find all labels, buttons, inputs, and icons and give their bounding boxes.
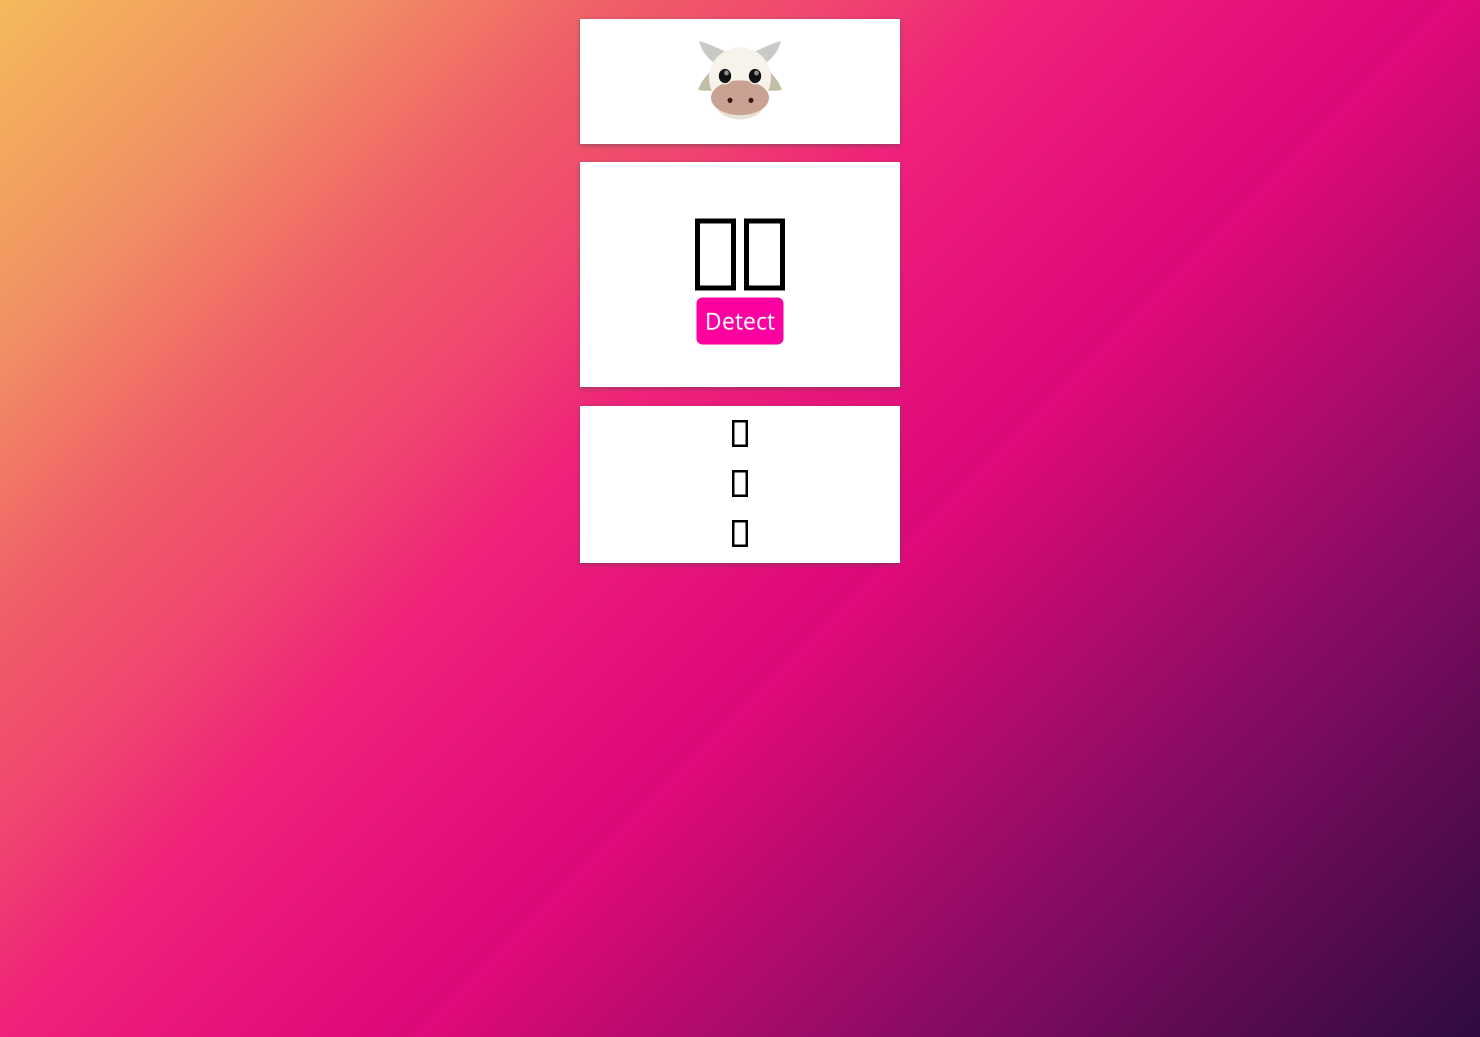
button[interactable]: Detect	[696, 297, 783, 344]
staticText: Detect	[705, 306, 775, 336]
